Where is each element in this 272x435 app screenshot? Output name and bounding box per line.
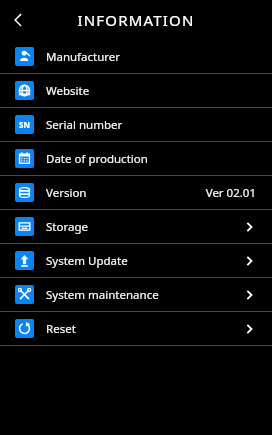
button[interactable]: Version: [0, 176, 272, 209]
button[interactable]: System maintenance: [0, 278, 272, 311]
button[interactable]: Back: [0, 2, 36, 38]
button[interactable]: Storage: [0, 210, 272, 243]
staticText: SN: [19, 119, 30, 130]
button[interactable]: Date of production: [0, 142, 272, 175]
staticText: Storage: [46, 219, 88, 235]
staticText: Website: [46, 83, 90, 99]
staticText: Version: [46, 185, 87, 201]
staticText: Manufacturer: [46, 49, 121, 65]
staticText: System maintenance: [46, 287, 159, 303]
button[interactable]: SN: [0, 108, 272, 141]
staticText: INFORMATION: [0, 10, 272, 30]
staticText: Date of production: [46, 151, 148, 167]
button[interactable]: System Update: [0, 244, 272, 277]
staticText: Ver 02.01: [205, 185, 256, 201]
staticText: Serial number: [46, 117, 123, 133]
button[interactable]: Website: [0, 74, 272, 107]
staticText: System Update: [46, 253, 128, 269]
button[interactable]: Reset: [0, 312, 272, 345]
button[interactable]: Manufacturer: [0, 40, 272, 73]
staticText: Reset: [46, 321, 76, 337]
